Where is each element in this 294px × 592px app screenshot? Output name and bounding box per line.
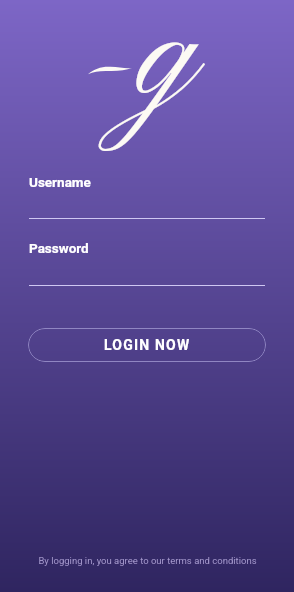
- button[interactable]: LOGIN NOW: [28, 328, 266, 362]
- staticText: Username: [29, 174, 91, 190]
- staticText: LOGIN NOW: [104, 337, 191, 353]
- button[interactable]: By logging in, you agree to our terms an…: [38, 555, 257, 566]
- staticText: g: [136, 0, 197, 151]
- staticText: Password: [29, 240, 89, 256]
